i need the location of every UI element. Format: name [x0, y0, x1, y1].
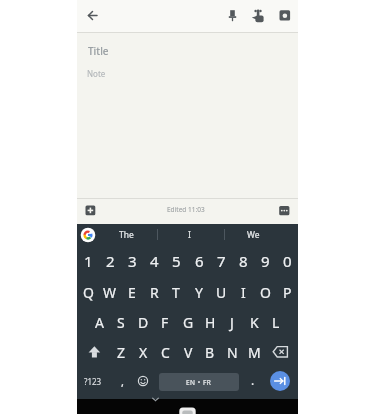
- button[interactable]: 2: [99, 247, 121, 275]
- button[interactable]: M: [243, 338, 265, 366]
- button[interactable]: 0: [276, 247, 298, 275]
- button[interactable]: I: [159, 224, 219, 246]
- button[interactable]: A: [88, 308, 110, 336]
- button[interactable]: Z: [110, 338, 132, 366]
- button[interactable]: 8: [232, 247, 254, 275]
- button[interactable]: G: [177, 308, 199, 336]
- staticText: K: [250, 313, 259, 332]
- button[interactable]: 9: [254, 247, 276, 275]
- staticText: ?123: [84, 376, 102, 387]
- button[interactable]: .: [245, 366, 261, 394]
- button[interactable]: [80, 227, 96, 243]
- button[interactable]: N: [221, 338, 243, 366]
- button[interactable]: E: [121, 278, 143, 306]
- button[interactable]: C: [154, 338, 176, 366]
- staticText: 9: [261, 251, 270, 271]
- button[interactable]: [82, 4, 105, 27]
- button[interactable]: 4: [143, 247, 165, 275]
- staticText: L: [272, 313, 280, 332]
- button[interactable]: We: [223, 224, 283, 246]
- staticText: 2: [106, 251, 115, 271]
- staticText: Note: [87, 68, 106, 79]
- button[interactable]: [82, 202, 99, 219]
- button[interactable]: The: [96, 224, 156, 246]
- staticText: 0: [283, 251, 292, 271]
- staticText: Z: [117, 343, 126, 362]
- button[interactable]: [133, 371, 153, 391]
- staticText: I: [241, 283, 246, 302]
- button[interactable]: J: [221, 308, 243, 336]
- staticText: R: [150, 283, 159, 302]
- staticText: 7: [217, 251, 226, 271]
- staticText: 1: [84, 251, 93, 271]
- button[interactable]: H: [199, 308, 221, 336]
- button[interactable]: K: [243, 308, 265, 336]
- staticText: G: [183, 313, 194, 332]
- button[interactable]: [268, 339, 294, 365]
- button[interactable]: [222, 4, 243, 27]
- button[interactable]: D: [132, 308, 154, 336]
- staticText: V: [184, 343, 193, 362]
- staticText: C: [161, 343, 170, 362]
- button[interactable]: F: [154, 308, 176, 336]
- staticText: EN • FR: [186, 378, 212, 387]
- button[interactable]: Y: [188, 278, 210, 306]
- button[interactable]: EN • FR: [159, 373, 239, 391]
- staticText: Q: [83, 283, 94, 302]
- staticText: P: [283, 283, 292, 302]
- button[interactable]: [274, 4, 295, 27]
- button[interactable]: S: [110, 308, 132, 336]
- button[interactable]: W: [99, 278, 121, 306]
- staticText: Title: [88, 44, 109, 58]
- button[interactable]: U: [210, 278, 232, 306]
- staticText: O: [260, 283, 271, 302]
- staticText: M: [248, 343, 261, 362]
- staticText: S: [117, 313, 125, 332]
- button[interactable]: ,: [114, 367, 130, 395]
- staticText: U: [216, 283, 227, 302]
- staticText: J: [230, 313, 234, 332]
- staticText: B: [205, 343, 215, 362]
- staticText: 6: [195, 251, 204, 271]
- staticText: .: [251, 372, 255, 388]
- button[interactable]: Q: [77, 278, 99, 306]
- button[interactable]: [276, 202, 293, 219]
- button[interactable]: 5: [165, 247, 187, 275]
- button[interactable]: T: [165, 278, 187, 306]
- staticText: We: [247, 229, 260, 241]
- staticText: 5: [172, 251, 181, 271]
- button[interactable]: I: [232, 278, 254, 306]
- staticText: 4: [150, 251, 159, 271]
- button[interactable]: 6: [188, 247, 210, 275]
- button[interactable]: V: [177, 338, 199, 366]
- staticText: F: [161, 313, 169, 332]
- button[interactable]: 7: [210, 247, 232, 275]
- button[interactable]: X: [132, 338, 154, 366]
- button[interactable]: ?123: [78, 367, 108, 395]
- button[interactable]: P: [276, 278, 298, 306]
- button[interactable]: [270, 371, 290, 391]
- button[interactable]: R: [143, 278, 165, 306]
- staticText: H: [205, 313, 216, 332]
- button[interactable]: L: [265, 308, 287, 336]
- staticText: 3: [128, 251, 137, 271]
- staticText: E: [128, 283, 136, 302]
- button[interactable]: B: [199, 338, 221, 366]
- staticText: ,: [121, 374, 124, 389]
- staticText: Edited 11:03: [167, 205, 205, 214]
- staticText: X: [139, 343, 148, 362]
- staticText: N: [227, 343, 238, 362]
- staticText: Y: [195, 283, 203, 302]
- staticText: 8: [239, 251, 248, 271]
- staticText: I: [188, 229, 191, 241]
- staticText: A: [95, 313, 104, 332]
- button[interactable]: O: [254, 278, 276, 306]
- button[interactable]: [83, 339, 106, 365]
- staticText: T: [172, 283, 180, 302]
- button[interactable]: 1: [77, 247, 99, 275]
- staticText: D: [138, 313, 149, 332]
- staticText: W: [103, 283, 117, 302]
- staticText: The: [119, 229, 134, 241]
- button[interactable]: [248, 4, 269, 27]
- button[interactable]: 3: [121, 247, 143, 275]
